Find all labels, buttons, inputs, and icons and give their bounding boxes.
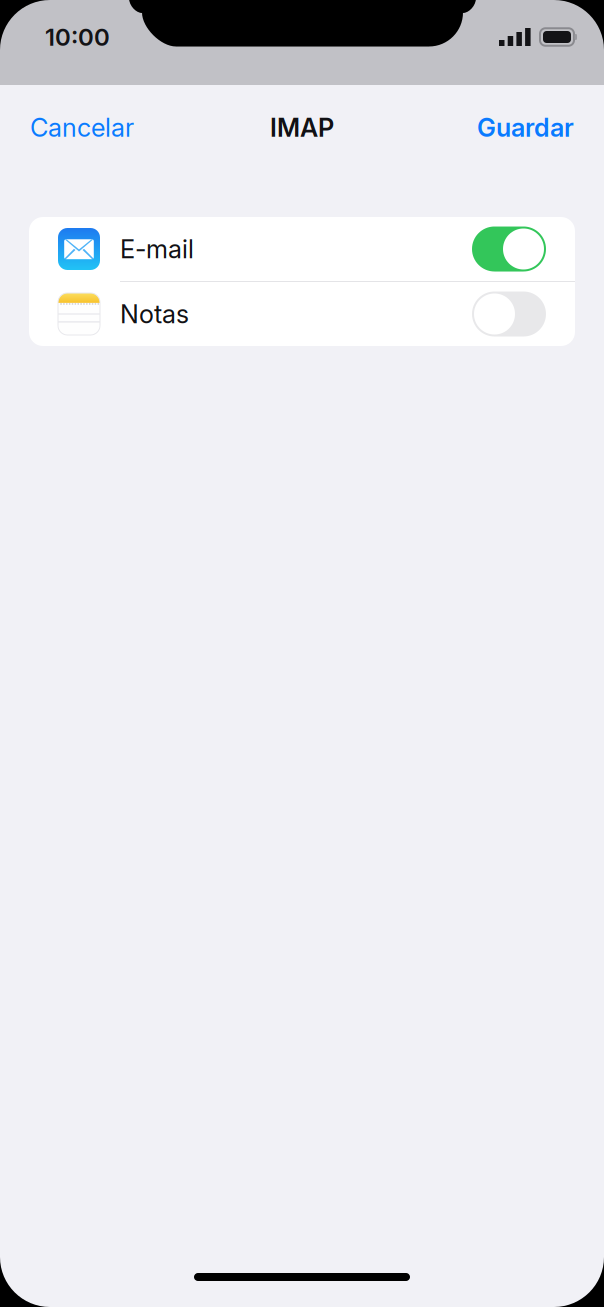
staticText: E-mail [120,234,194,264]
staticText: Cancelar [30,112,134,143]
button[interactable]: Guardar [461,98,604,157]
staticText: Guardar [477,112,574,143]
button[interactable]: Notas [29,282,575,346]
staticText: IMAP [270,112,334,143]
button[interactable]: Cancelar [0,98,150,157]
button[interactable]: E-mail [29,217,575,281]
staticText: Notas [120,299,189,329]
staticText: 10:00 [45,22,110,51]
